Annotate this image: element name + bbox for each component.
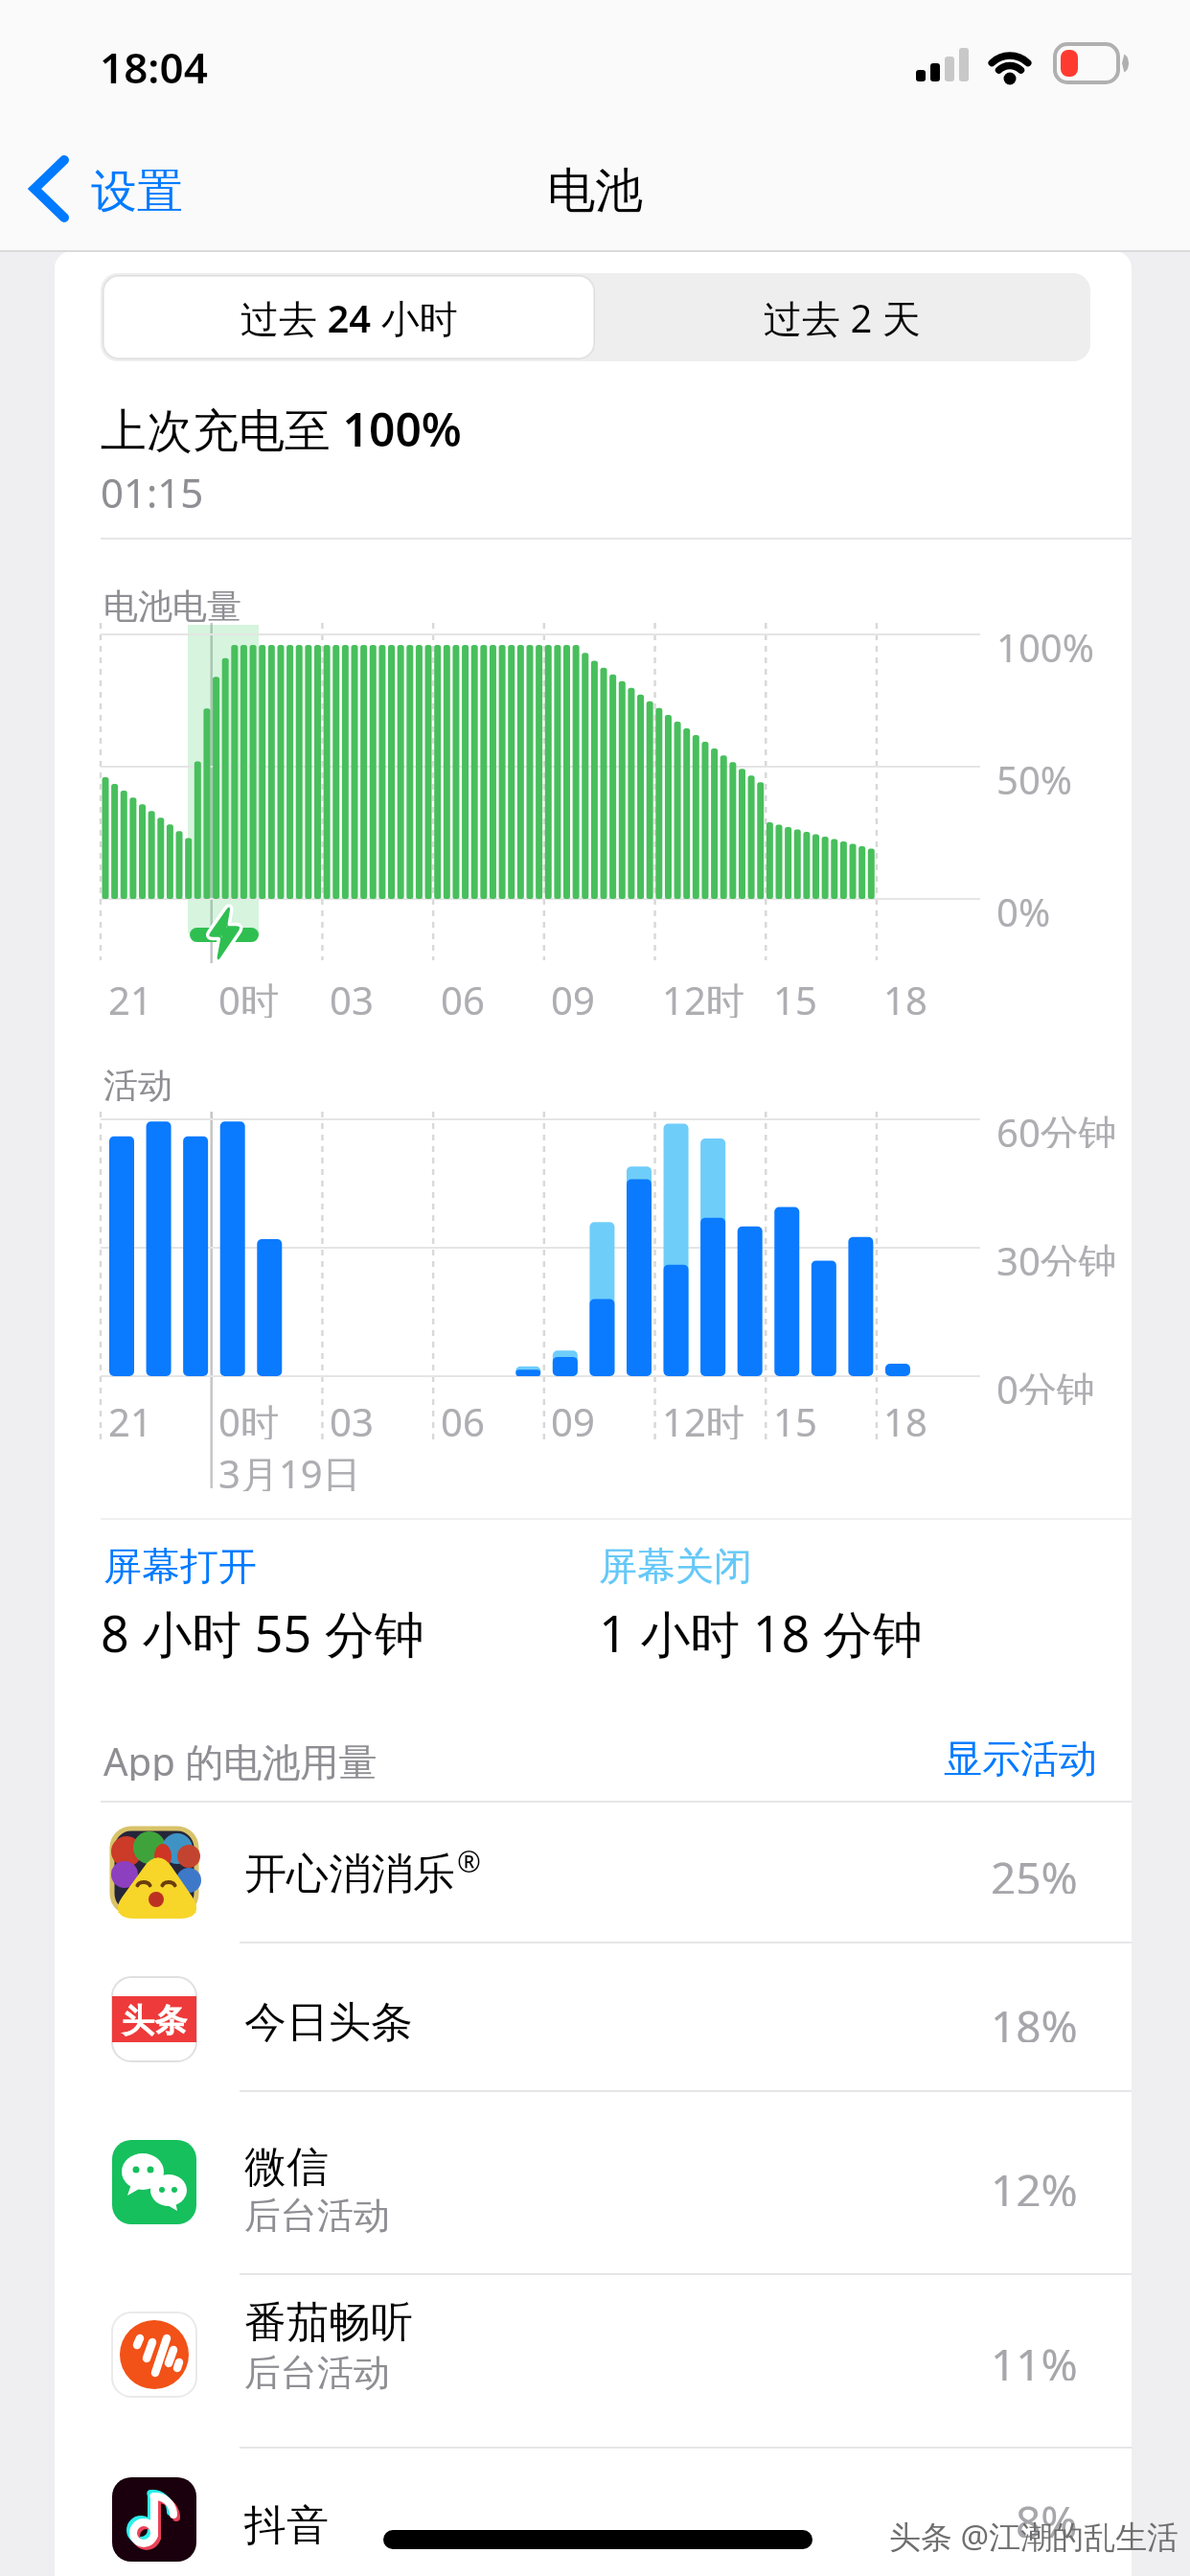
- staticText: 抖音: [244, 2499, 329, 2545]
- staticText: 60分钟: [996, 1106, 1117, 1148]
- staticText: 09: [551, 974, 595, 1018]
- button[interactable]: 设置: [19, 144, 287, 240]
- staticText: 今日头条: [244, 1996, 413, 2042]
- staticText: 电池电量: [103, 585, 241, 627]
- staticText: 番茄畅听: [244, 2296, 413, 2342]
- button[interactable]: 显示活动: [905, 1735, 1097, 1781]
- staticText: 06: [441, 974, 485, 1018]
- button[interactable]: 过去 2 天: [594, 276, 1090, 358]
- staticText: 06: [441, 1395, 485, 1439]
- staticText: 21: [108, 974, 152, 1018]
- button[interactable]: [55, 1943, 1132, 2091]
- staticText: 头条: [122, 2000, 187, 2041]
- staticText: 1 小时 18 分钟: [599, 1598, 923, 1660]
- staticText: 09: [551, 1395, 595, 1439]
- staticText: 屏幕关闭: [599, 1542, 752, 1586]
- staticText: 03: [330, 1395, 374, 1439]
- staticText: 显示活动: [944, 1735, 1097, 1781]
- button[interactable]: [55, 2449, 1132, 2576]
- staticText: 过去 24 小时: [240, 291, 458, 344]
- staticText: 18: [883, 974, 927, 1018]
- staticText: 8 小时 55 分钟: [101, 1598, 424, 1660]
- staticText: 18:04: [100, 38, 208, 88]
- staticText: ®: [457, 1842, 481, 1880]
- staticText: 21: [108, 1395, 152, 1439]
- staticText: 15: [773, 974, 817, 1018]
- staticText: 11%: [991, 2334, 1078, 2380]
- staticText: 电池: [547, 161, 643, 221]
- staticText: 设置: [91, 163, 183, 220]
- staticText: 0分钟: [996, 1363, 1095, 1405]
- button[interactable]: [55, 1803, 1132, 1943]
- staticText: 12%: [991, 2160, 1078, 2206]
- staticText: 头条 @江潮的乱生活: [889, 2515, 1179, 2557]
- staticText: 微信: [244, 2141, 329, 2187]
- staticText: 屏幕打开: [103, 1542, 257, 1586]
- staticText: 开心消消乐: [244, 1848, 455, 1894]
- staticText: 01:15: [101, 465, 204, 513]
- staticText: 30分钟: [996, 1234, 1117, 1276]
- staticText: 0时: [218, 1395, 279, 1439]
- staticText: 后台活动: [244, 2193, 390, 2235]
- staticText: 25%: [991, 1848, 1078, 1894]
- staticText: 18: [883, 1395, 927, 1439]
- button[interactable]: [55, 2275, 1132, 2448]
- staticText: 0%: [996, 885, 1051, 928]
- staticText: 100%: [996, 621, 1094, 663]
- staticText: 过去 2 天: [764, 291, 921, 344]
- staticText: 0时: [218, 974, 279, 1018]
- staticText: 3月19日: [218, 1447, 361, 1491]
- staticText: 50%: [996, 753, 1072, 795]
- staticText: 18%: [991, 1996, 1078, 2042]
- staticText: App 的电池用量: [103, 1735, 378, 1781]
- staticText: 后台活动: [244, 2350, 390, 2392]
- staticText: 12时: [662, 974, 744, 1018]
- button[interactable]: [55, 2092, 1132, 2274]
- staticText: 12时: [662, 1395, 744, 1439]
- staticText: 15: [773, 1395, 817, 1439]
- staticText: 活动: [103, 1064, 172, 1106]
- staticText: 8%: [1016, 2492, 1078, 2538]
- staticText: 上次充电至 100%: [101, 398, 462, 455]
- staticText: 03: [330, 974, 374, 1018]
- button[interactable]: 过去 24 小时: [103, 276, 594, 358]
